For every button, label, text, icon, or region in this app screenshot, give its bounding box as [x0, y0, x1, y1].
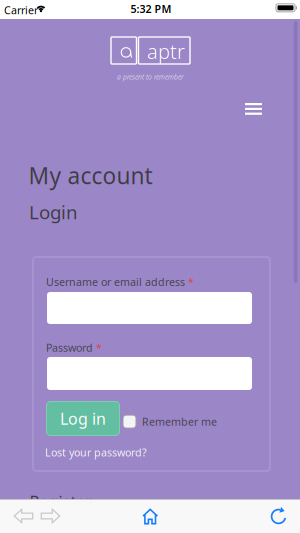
staticText: Remember me [142, 414, 217, 429]
button[interactable]: Username or email address [47, 292, 252, 324]
button[interactable]: Reload [269, 507, 287, 525]
button[interactable]: Lost your password? [45, 445, 147, 460]
staticText: Lost your password? [45, 445, 147, 460]
staticText: Register [29, 491, 92, 512]
staticText: Login [29, 199, 78, 224]
button[interactable]: Forward [40, 508, 60, 523]
button[interactable]: Log in [46, 401, 119, 435]
staticText: 5:32 PM [130, 2, 171, 16]
button[interactable]: Menu [245, 103, 262, 115]
staticText: Password [46, 340, 93, 355]
staticText: aptr [147, 38, 185, 65]
staticText: * [96, 340, 102, 355]
button[interactable]: Back [13, 508, 33, 523]
staticText: Log in [60, 408, 106, 429]
button[interactable]: Home [142, 508, 158, 524]
staticText: a present to remember [117, 73, 184, 81]
button[interactable]: Password [47, 357, 252, 390]
staticText: Username or email address [46, 275, 185, 289]
staticText: * [188, 275, 194, 289]
staticText: My account [28, 160, 152, 191]
staticText: Carrier [4, 3, 38, 17]
button[interactable]: Remember me [123, 414, 217, 429]
